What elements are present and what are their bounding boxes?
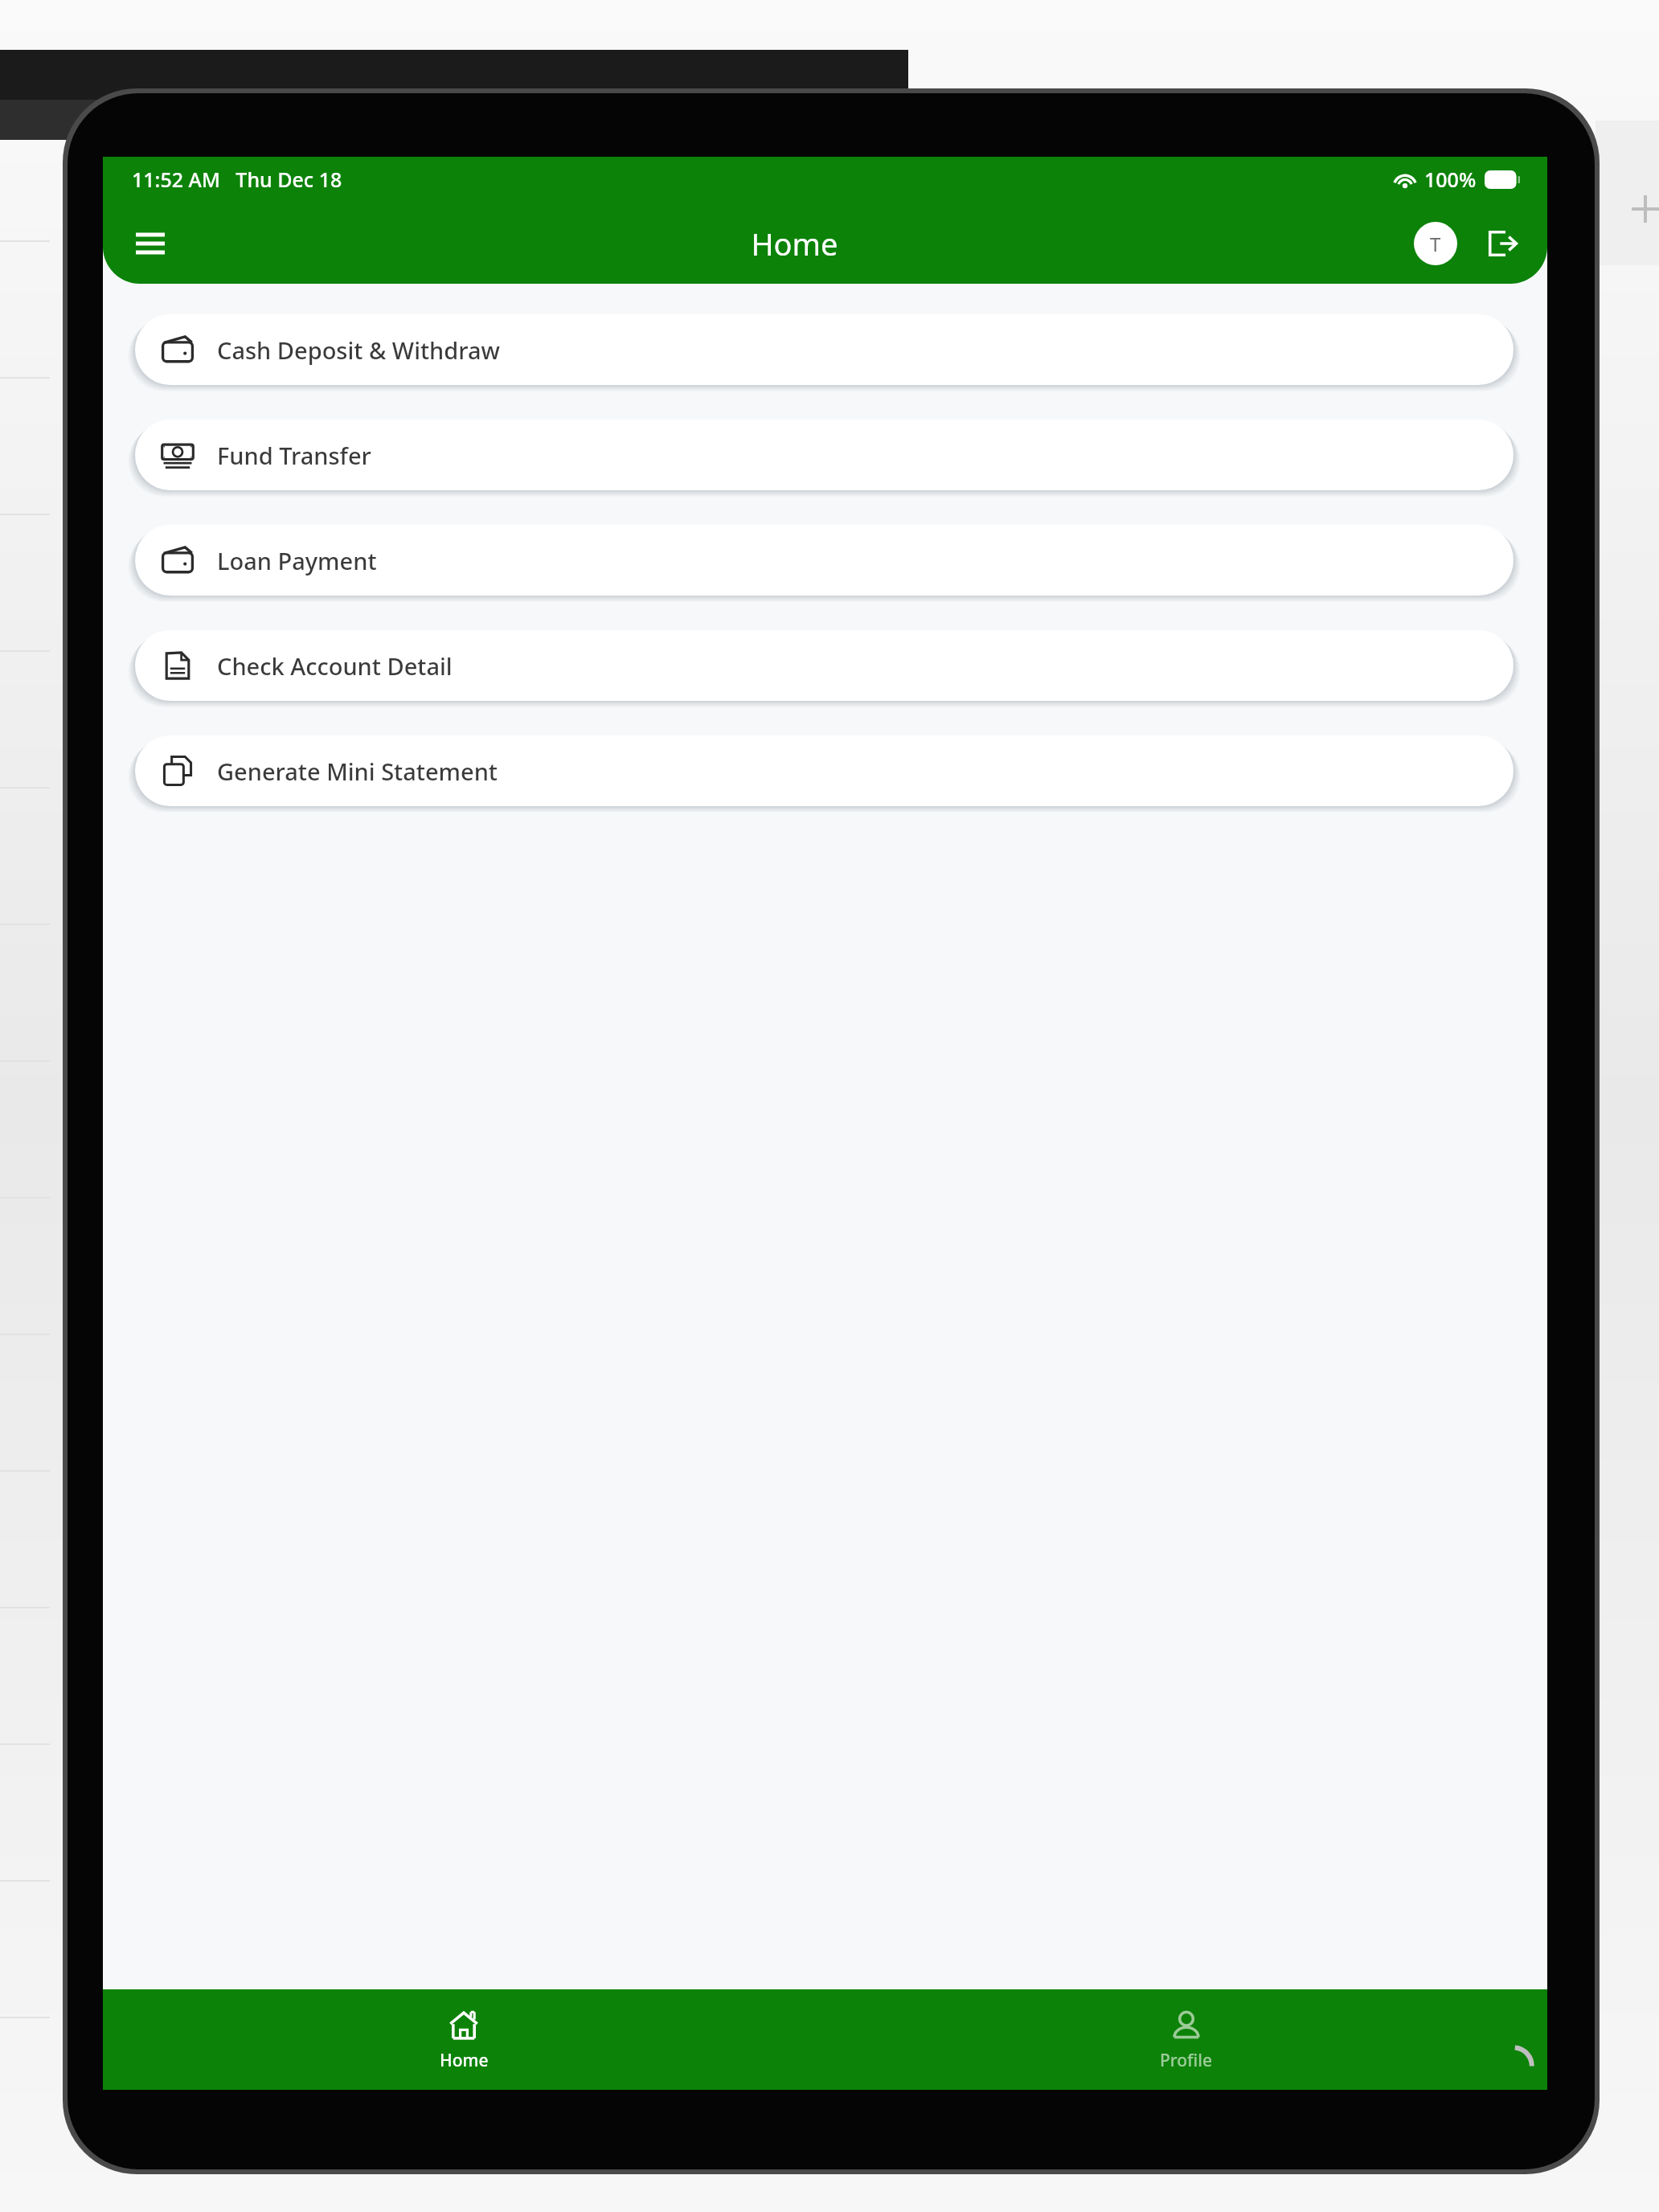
button[interactable]: Check Account Detail xyxy=(135,630,1514,701)
staticText: 11:52 AM Thu Dec 18 xyxy=(132,166,342,193)
button[interactable]: Generate Mini Statement xyxy=(135,735,1514,806)
staticText: Check Account Detail xyxy=(217,650,453,682)
staticText: Loan Payment xyxy=(217,545,377,576)
staticText: Home xyxy=(751,223,838,264)
staticText: T xyxy=(1430,231,1441,257)
button[interactable]: Profile xyxy=(825,1989,1547,2090)
staticText: Cash Deposit & Withdraw xyxy=(217,334,500,366)
staticText: Home xyxy=(440,2049,489,2072)
button[interactable]: Loan Payment xyxy=(135,525,1514,596)
button[interactable]: Cash Deposit & Withdraw xyxy=(135,314,1514,385)
staticText: Profile xyxy=(1160,2049,1212,2072)
staticText: 100% xyxy=(1424,166,1477,193)
staticText: Generate Mini Statement xyxy=(217,756,498,787)
button[interactable]: Profile avatar xyxy=(1414,222,1457,265)
staticText: Fund Transfer xyxy=(217,440,371,471)
button[interactable]: Home xyxy=(103,1989,825,2090)
button[interactable]: Open navigation menu xyxy=(125,219,175,268)
button[interactable]: Fund Transfer xyxy=(135,420,1514,490)
button[interactable]: Log out xyxy=(1478,220,1525,267)
